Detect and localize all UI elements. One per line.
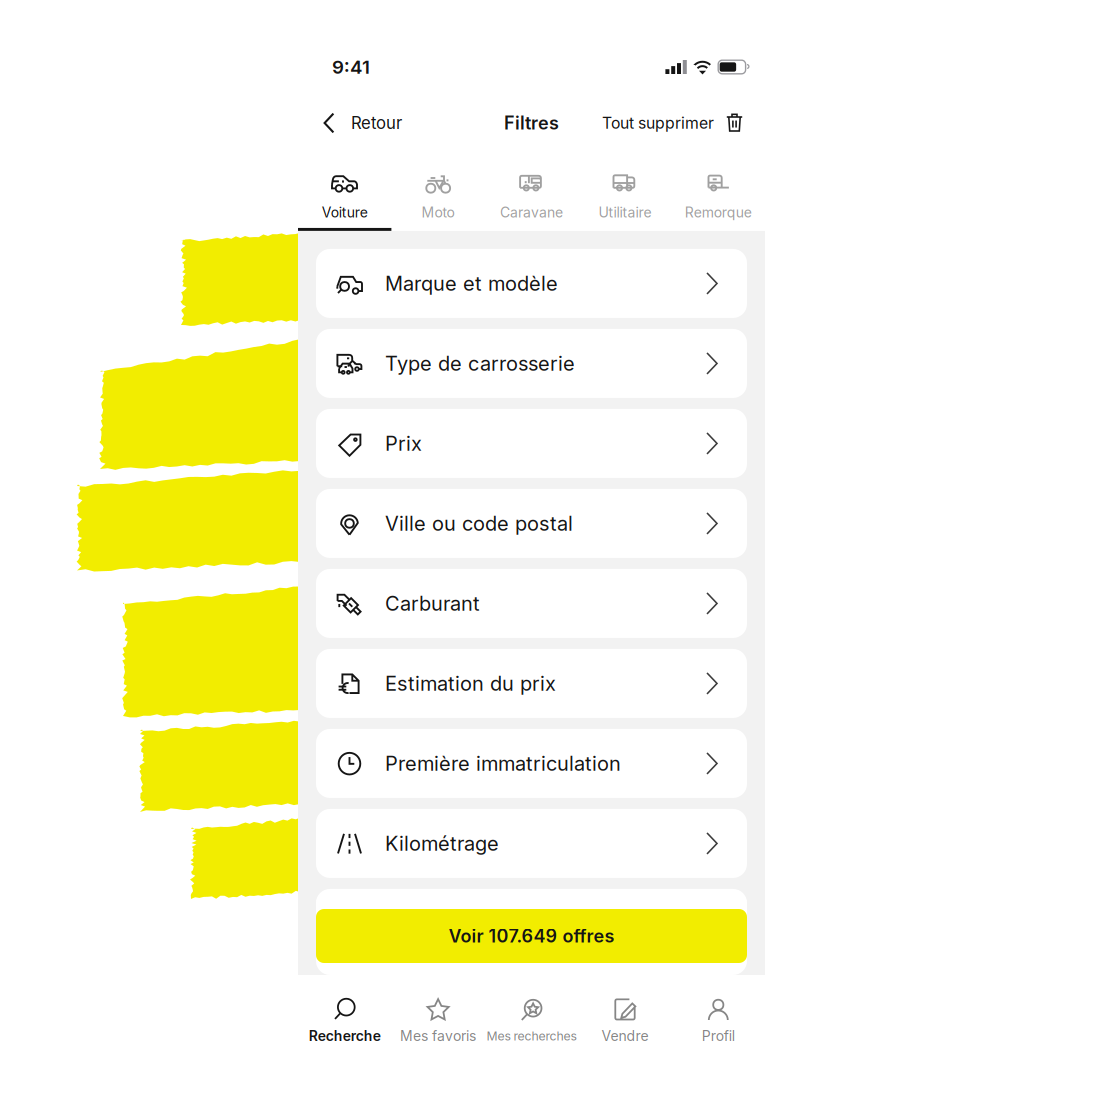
staticText: Filtres [504,112,559,134]
staticText: Première immatriculation [385,751,621,775]
staticText: Mes recherches [486,1029,576,1043]
staticText: Remorque [685,204,752,221]
button[interactable]: Estimation du prix [316,649,747,718]
staticText: Mes favoris [400,1027,476,1044]
button[interactable]: Remorque [672,168,765,231]
staticText: Marque et modèle [385,271,558,295]
staticText: 9:41 [332,56,370,78]
staticText: Voiture [322,204,368,221]
button[interactable]: Retour [323,112,402,134]
button[interactable]: Ville ou code postal [316,489,747,558]
button[interactable]: Recherche [298,996,391,1044]
button[interactable]: Boîte de vitesses [316,889,747,958]
staticText: Caravane [500,204,563,221]
button[interactable]: Utilitaire [578,168,672,231]
staticText: Estimation du prix [385,671,556,695]
button[interactable]: Mes recherches [485,998,578,1043]
staticText: Type de carrosserie [385,351,575,375]
button[interactable]: Voir 107.649 offres [316,909,747,963]
button[interactable]: Mes favoris [391,996,485,1044]
staticText: Profil [702,1027,735,1044]
staticText: Moto [422,204,455,221]
staticText: Vendre [601,1027,648,1044]
staticText: Carburant [385,591,480,615]
staticText: Tout supprimer [602,113,714,132]
staticText: Retour [351,113,402,133]
button[interactable]: Marque et modèle [316,249,747,318]
staticText: Voir 107.649 offres [448,925,614,947]
staticText: Utilitaire [598,204,651,221]
button[interactable]: Kilométrage [316,809,747,878]
staticText: Ville ou code postal [385,511,573,535]
button[interactable]: Vendre [578,996,672,1044]
button[interactable]: Type de carrosserie [316,329,747,398]
staticText: Recherche [309,1027,381,1044]
button[interactable]: Profil [672,996,765,1044]
button[interactable]: Première immatriculation [316,729,747,798]
staticText: Kilométrage [385,831,499,855]
button[interactable]: Tout supprimer [602,112,743,133]
button[interactable]: Prix [316,409,747,478]
staticText: Boîte de vitesses [385,911,545,935]
staticText: Prix [385,431,422,455]
button[interactable]: Carburant [316,569,747,638]
button[interactable]: Moto [391,168,485,231]
button[interactable]: Voiture [298,168,391,231]
button[interactable]: Caravane [485,168,578,231]
